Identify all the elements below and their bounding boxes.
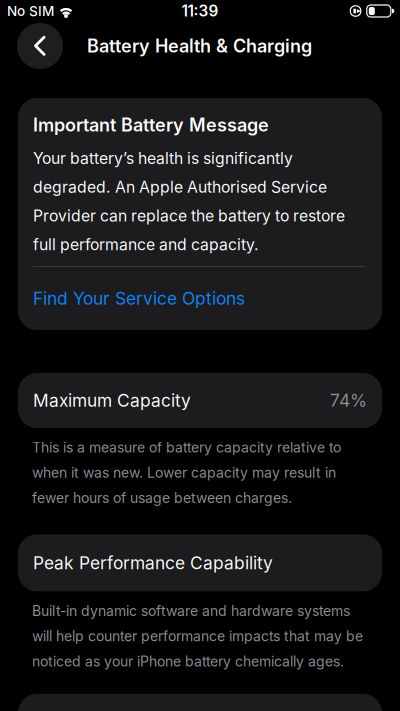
button[interactable]: Peak Performance Capability bbox=[18, 534, 382, 591]
staticText: Find Your Service Options bbox=[33, 288, 245, 309]
staticText: Battery Health & Charging bbox=[87, 35, 312, 57]
staticText: No SIM bbox=[7, 3, 54, 19]
staticText: Your battery’s health is significantly d… bbox=[33, 149, 345, 254]
staticText: This is a measure of battery capacity re… bbox=[32, 439, 341, 506]
staticText: Peak Performance Capability bbox=[33, 552, 273, 573]
button[interactable]: Maximum Capacity bbox=[18, 373, 382, 428]
button[interactable]: Find Your Service Options bbox=[33, 267, 245, 330]
staticText: Important Battery Message bbox=[33, 114, 269, 136]
button[interactable]: Back bbox=[17, 23, 63, 69]
staticText: Maximum Capacity bbox=[33, 390, 191, 411]
staticText: Built-in dynamic software and hardware s… bbox=[32, 602, 363, 670]
staticText: 11:39 bbox=[181, 2, 218, 20]
staticText: 74% bbox=[330, 390, 367, 411]
button[interactable]: Optimised Battery Charging bbox=[18, 694, 382, 711]
